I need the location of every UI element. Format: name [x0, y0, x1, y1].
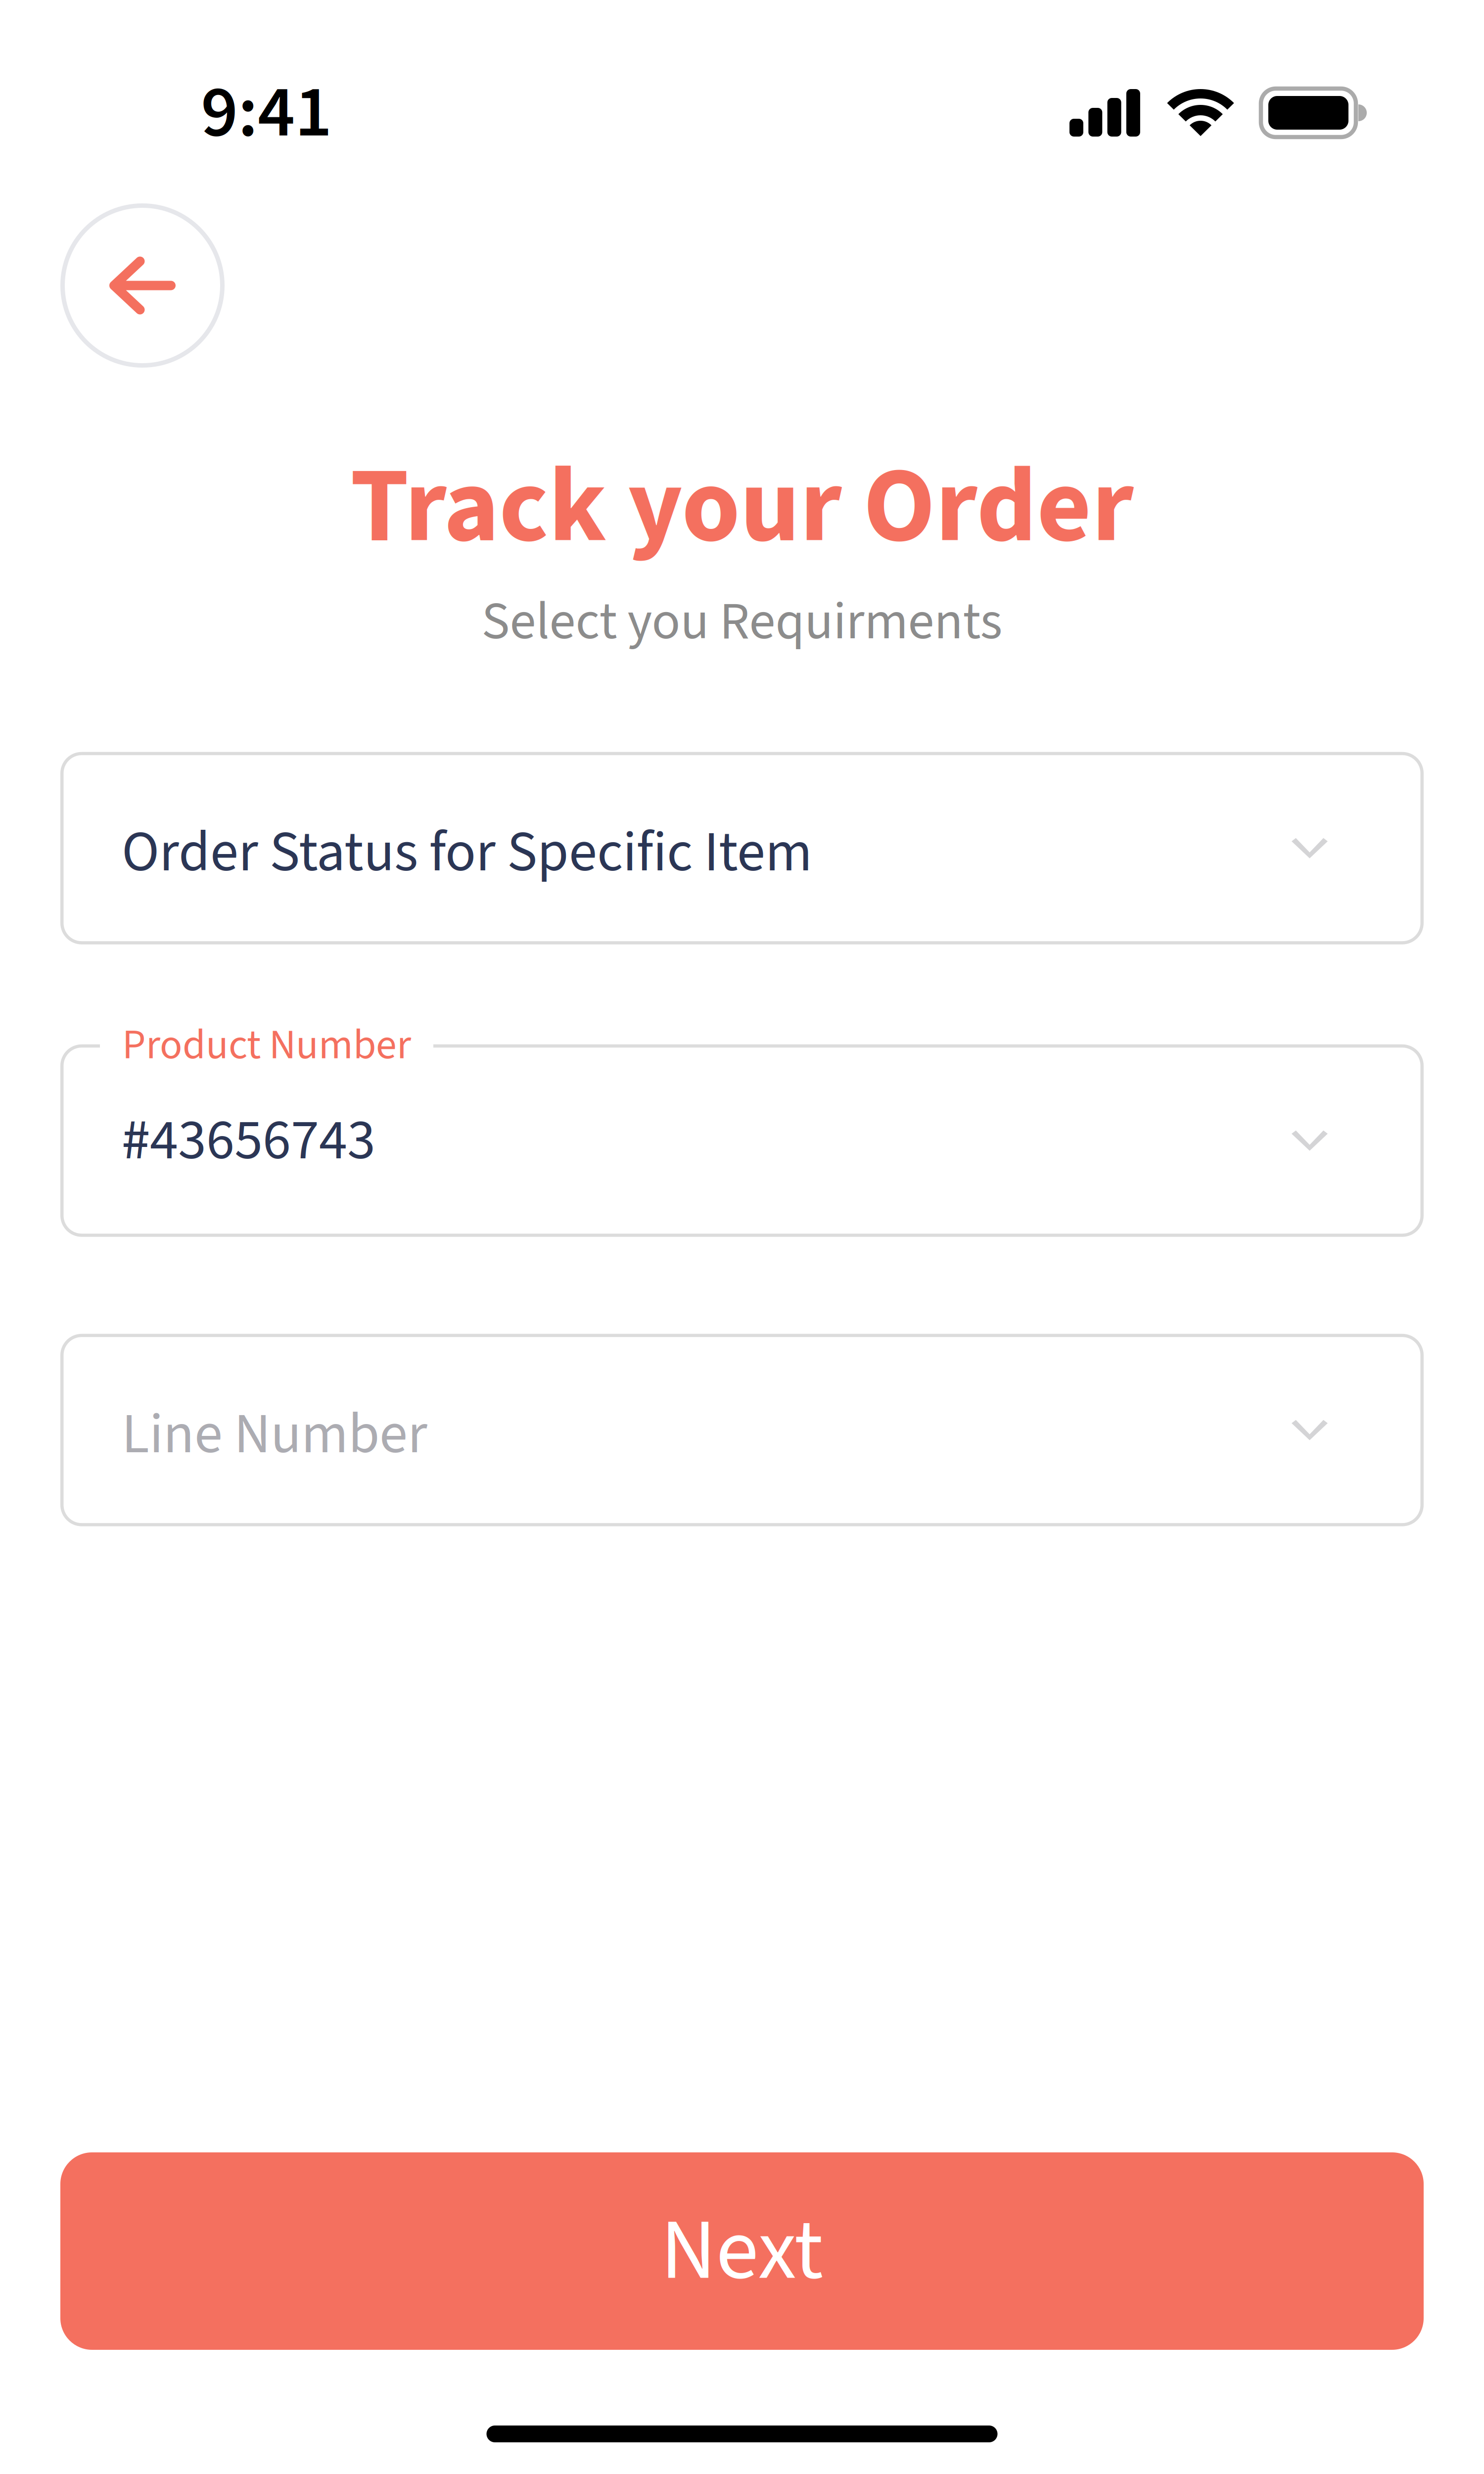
button[interactable]: Next: [60, 2152, 1424, 2350]
staticText: Product Number: [122, 1016, 411, 1075]
staticText: #43656743: [122, 1100, 375, 1181]
button[interactable]: Back: [60, 203, 225, 368]
button[interactable]: #43656743: [60, 1044, 1424, 1237]
staticText: Next: [661, 2190, 823, 2312]
staticText: 9:41: [201, 61, 332, 165]
staticText: Select you Requirments: [482, 584, 1002, 659]
button[interactable]: Order Status for Specific Item: [60, 752, 1424, 944]
staticText: Order Status for Specific Item: [122, 812, 812, 893]
staticText: Track your Order: [350, 432, 1134, 582]
button[interactable]: Line Number: [60, 1334, 1424, 1526]
staticText: Line Number: [122, 1394, 427, 1475]
